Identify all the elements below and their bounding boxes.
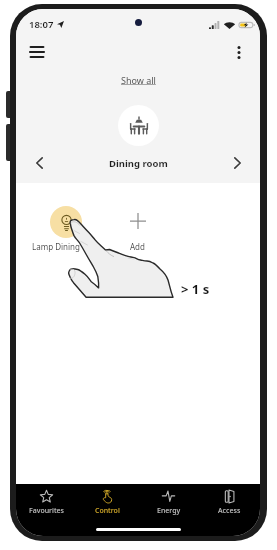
button[interactable]: Favourites (16, 489, 77, 517)
button[interactable]: Menu (24, 39, 50, 65)
staticText: Add (130, 241, 145, 252)
button[interactable]: Next room (224, 150, 250, 176)
button[interactable]: Add device (122, 205, 154, 237)
button[interactable]: Access (199, 489, 260, 517)
staticText: > 1 s (181, 280, 210, 298)
staticText: Dining room (109, 157, 168, 170)
staticText: Lamp Dining (32, 241, 80, 252)
button[interactable]: Previous room (26, 150, 52, 176)
button[interactable] (49, 206, 82, 238)
staticText: Show all (121, 74, 156, 86)
button[interactable]: More options (226, 39, 252, 65)
button[interactable]: Dining room (118, 105, 159, 146)
staticText: 18:07 (29, 18, 54, 31)
button[interactable]: Control (77, 489, 138, 517)
staticText: Access (218, 506, 241, 516)
staticText: Energy (157, 506, 181, 516)
staticText: Control (95, 506, 120, 516)
staticText: Favourites (29, 506, 65, 516)
button[interactable]: Energy (138, 489, 199, 517)
button[interactable]: Show all (113, 71, 164, 89)
